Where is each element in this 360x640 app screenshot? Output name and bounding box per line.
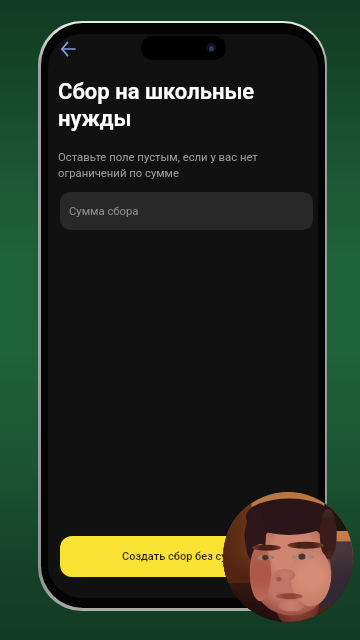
staticText: Сбор на школьные нужды	[58, 79, 273, 131]
staticText: Сумма сбора	[69, 205, 139, 218]
button[interactable]: Создать сбор без суммы	[60, 536, 313, 577]
staticText: Оставьте поле пустым, если у вас нет огр…	[58, 151, 273, 179]
button[interactable]: Back	[53, 34, 83, 64]
button[interactable]: Сумма сбора	[60, 192, 313, 230]
staticText: Создать сбор без суммы	[122, 550, 252, 563]
